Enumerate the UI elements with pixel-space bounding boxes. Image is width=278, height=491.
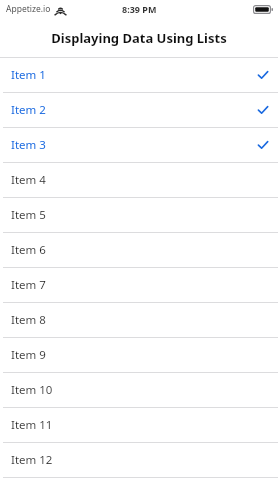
button[interactable]: Item 2 xyxy=(0,93,278,128)
staticText: Displaying Data Using Lists xyxy=(51,29,227,47)
button[interactable]: Item 6 xyxy=(0,233,278,268)
staticText: Item 9 xyxy=(11,347,46,363)
staticText: Appetize.io xyxy=(6,3,51,15)
staticText: Item 8 xyxy=(11,312,46,328)
button[interactable]: Item 3 xyxy=(0,128,278,163)
staticText: Item 12 xyxy=(11,452,53,468)
staticText: Item 6 xyxy=(11,242,46,258)
staticText: Item 5 xyxy=(11,207,46,223)
button[interactable]: Item 11 xyxy=(0,408,278,443)
button[interactable]: Item 1 xyxy=(0,58,278,93)
button[interactable]: Item 9 xyxy=(0,338,278,373)
button[interactable]: Item 8 xyxy=(0,303,278,338)
staticText: Item 3 xyxy=(11,137,46,153)
button[interactable]: Item 5 xyxy=(0,198,278,233)
staticText: Item 1 xyxy=(11,67,46,83)
staticText: Item 11 xyxy=(11,417,53,433)
staticText: 8:39 PM xyxy=(122,3,157,15)
button[interactable]: Item 12 xyxy=(0,443,278,478)
staticText: Item 10 xyxy=(11,382,53,398)
button[interactable]: Item 7 xyxy=(0,268,278,303)
staticText: Item 7 xyxy=(11,277,46,293)
button[interactable]: Item 10 xyxy=(0,373,278,408)
button[interactable]: Item 4 xyxy=(0,163,278,198)
staticText: Item 2 xyxy=(11,102,46,118)
staticText: Item 4 xyxy=(11,172,46,188)
